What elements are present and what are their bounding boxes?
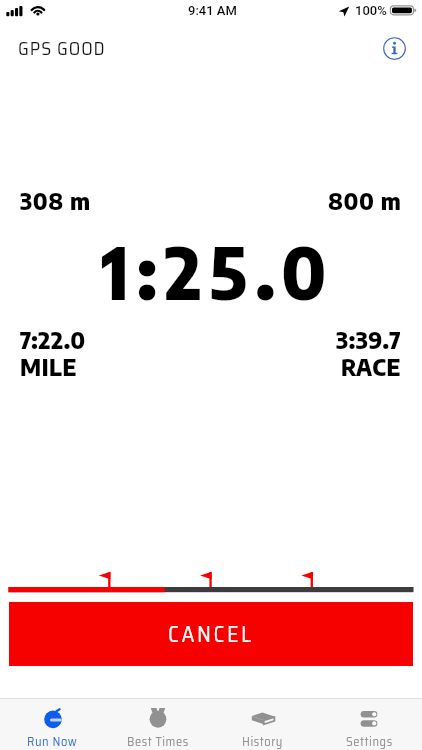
button[interactable]: History [210, 699, 316, 750]
staticText: 308 m [20, 186, 91, 215]
staticText: 7:22.0 [20, 325, 86, 354]
staticText: MILE [20, 352, 78, 381]
button[interactable]: Information [383, 37, 406, 60]
staticText: Best Times [127, 732, 189, 750]
staticText: RACE [341, 352, 402, 381]
staticText: Settings [346, 732, 393, 750]
staticText: 3:39.7 [336, 325, 402, 354]
button[interactable]: CANCEL [9, 602, 413, 666]
staticText: Run Now [27, 732, 78, 750]
button[interactable]: Settings [316, 699, 422, 750]
staticText: 800 m [328, 186, 402, 215]
button[interactable]: Best Times [105, 699, 210, 750]
button[interactable]: Run Now [0, 699, 105, 750]
staticText: GPS GOOD [18, 34, 106, 63]
staticText: 9:41 AM [188, 3, 237, 18]
staticText: 100% [355, 3, 387, 18]
staticText: History [242, 732, 284, 750]
staticText: CANCEL [168, 617, 254, 652]
staticText: 1:25.0 [7, 227, 422, 316]
